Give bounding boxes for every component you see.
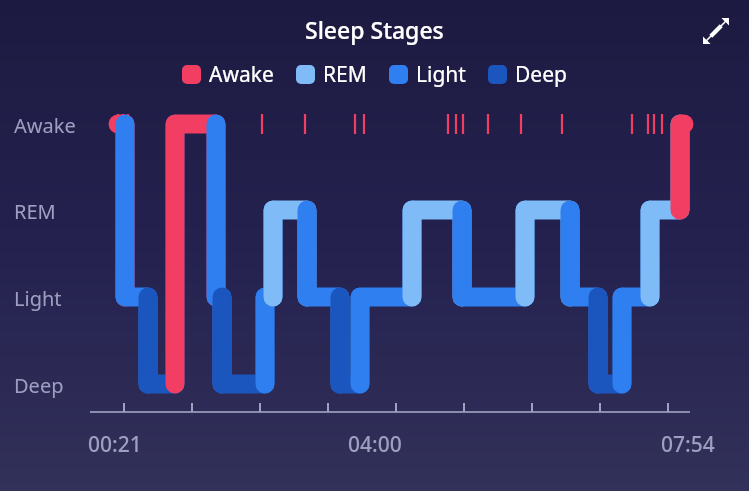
button[interactable]: Deep bbox=[488, 60, 567, 89]
staticText: Light bbox=[416, 60, 466, 89]
button[interactable]: Awake bbox=[182, 60, 274, 89]
staticText: REM bbox=[323, 60, 367, 89]
staticText: Awake bbox=[14, 112, 76, 139]
staticText: 00:21 bbox=[88, 430, 142, 459]
staticText: 04:00 bbox=[348, 430, 402, 459]
staticText: 07:54 bbox=[661, 430, 715, 459]
staticText: Deep bbox=[515, 60, 567, 89]
button[interactable]: Light bbox=[389, 60, 466, 89]
button[interactable]: Expand chart bbox=[693, 8, 739, 54]
staticText: Light bbox=[14, 285, 62, 312]
staticText: Deep bbox=[14, 372, 64, 399]
button[interactable]: REM bbox=[296, 60, 367, 89]
staticText: REM bbox=[14, 198, 56, 225]
staticText: Sleep Stages bbox=[305, 14, 444, 45]
staticText: Awake bbox=[209, 60, 274, 89]
